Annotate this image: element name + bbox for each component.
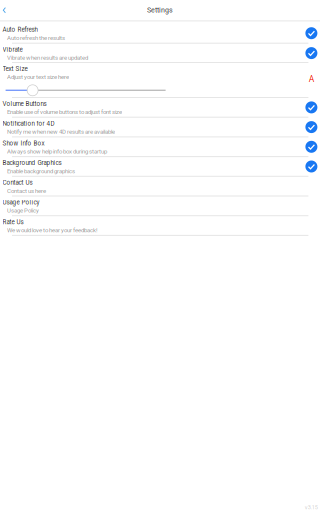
staticText: A: [309, 74, 315, 84]
button[interactable]: Contact Us: [0, 177, 320, 196]
staticText: v3.15: [305, 504, 318, 510]
button[interactable]: Rate Us: [0, 216, 320, 236]
staticText: Auto refresh the results: [7, 34, 65, 41]
staticText: Text Size: [2, 65, 27, 72]
staticText: Enable use of volume buttons to adjust f…: [7, 108, 122, 115]
staticText: Usage Policy: [7, 207, 39, 214]
button[interactable]: Back: [0, 1, 11, 19]
staticText: Rate Us: [2, 218, 23, 226]
staticText: Contact Us: [2, 179, 32, 186]
button[interactable]: Volume Buttons: [0, 98, 320, 118]
staticText: Show Info Box: [2, 140, 44, 147]
staticText: Always show help info box during startup: [7, 148, 107, 155]
staticText: Vibrate when results are updated: [7, 54, 88, 61]
staticText: Background Graphics: [2, 159, 61, 167]
staticText: Enable background graphics: [7, 168, 75, 175]
button[interactable]: Notification for 4D: [0, 118, 320, 137]
staticText: Contact us here: [7, 187, 46, 194]
button[interactable]: Background Graphics: [0, 157, 320, 177]
staticText: Vibrate: [2, 46, 22, 53]
button[interactable]: Show Info Box: [0, 137, 320, 157]
staticText: We would love to hear your feedback!: [7, 227, 98, 234]
button[interactable]: Auto Refresh: [0, 21, 320, 44]
staticText: Auto Refresh: [2, 26, 37, 33]
staticText: Notify me when new 4D results are availa…: [7, 128, 115, 135]
staticText: Adjust your text size here: [7, 73, 69, 80]
staticText: Volume Buttons: [2, 100, 46, 107]
staticText: Settings: [147, 6, 173, 14]
button[interactable]: Text Size: [0, 63, 320, 98]
button[interactable]: Usage Policy: [0, 196, 320, 216]
staticText: Usage Policy: [2, 199, 39, 206]
button[interactable]: Vibrate: [0, 44, 320, 63]
staticText: Notification for 4D: [2, 120, 54, 127]
